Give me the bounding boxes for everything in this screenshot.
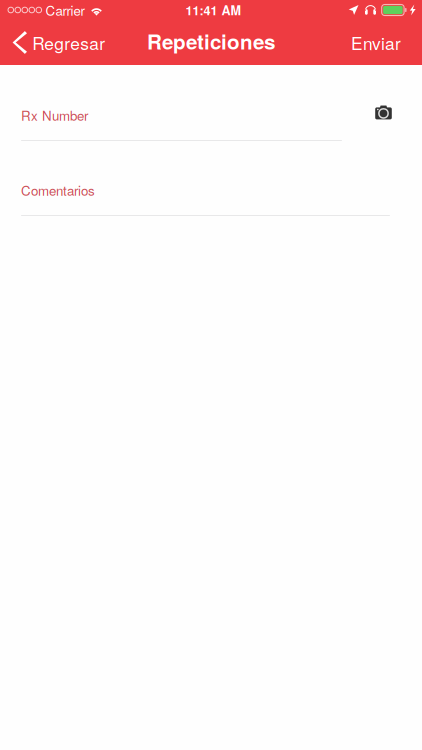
staticText: 11:41 AM [185, 1, 241, 19]
staticText: Rx Number [21, 105, 88, 125]
button[interactable]: Enviar [337, 20, 422, 64]
button[interactable]: Take photo [365, 96, 402, 129]
button[interactable]: Regresar [0, 20, 115, 64]
staticText: Comentarios [21, 180, 95, 200]
staticText: Enviar [351, 30, 401, 55]
staticText: Repeticiones [147, 26, 275, 56]
staticText: Carrier [46, 0, 85, 20]
staticText: Regresar [32, 30, 105, 55]
